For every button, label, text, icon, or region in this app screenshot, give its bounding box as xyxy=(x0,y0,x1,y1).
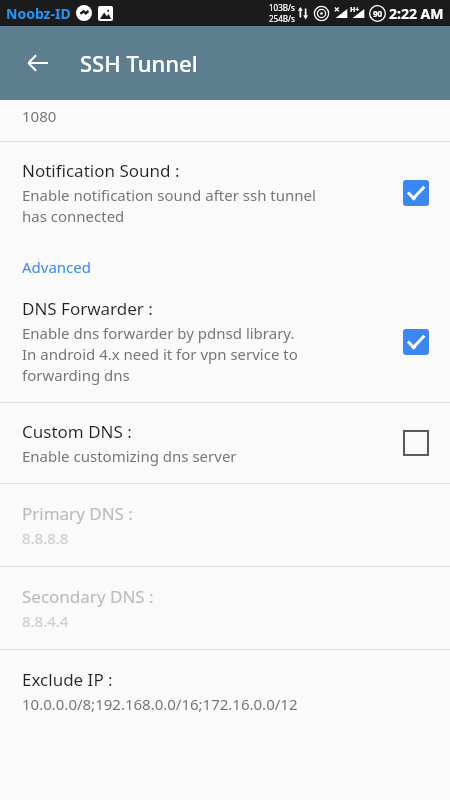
staticText: 90 xyxy=(373,8,383,19)
button[interactable]: Back xyxy=(14,39,62,87)
button[interactable]: Custom DNS : xyxy=(0,403,450,483)
staticText: 8.8.4.4 xyxy=(22,611,69,631)
staticText: Enable customizing dns server xyxy=(22,446,237,466)
button[interactable]: Enabled checkbox xyxy=(392,318,440,366)
staticText: Exclude IP : xyxy=(22,668,113,691)
staticText: Primary DNS : xyxy=(22,502,133,525)
button[interactable]: Enabled checkbox xyxy=(392,169,440,217)
staticText: H+ xyxy=(350,5,360,15)
staticText: 1080 xyxy=(22,106,57,126)
button[interactable]: Disabled checkbox xyxy=(392,419,440,467)
staticText: 2:22 AM xyxy=(389,4,444,23)
staticText: 103B/s xyxy=(269,2,295,13)
staticText: Enable notification sound after ssh tunn… xyxy=(22,185,316,227)
staticText: SSH Tunnel xyxy=(80,48,198,78)
staticText: Noobz-ID xyxy=(6,4,71,23)
staticText: 10.0.0.0/8;192.168.0.0/16;172.16.0.0/12 xyxy=(22,694,298,714)
staticText: Advanced xyxy=(22,257,92,277)
staticText: Secondary DNS : xyxy=(22,585,154,608)
button[interactable]: Primary DNS : xyxy=(0,484,450,566)
staticText: DNS Forwarder : xyxy=(22,297,153,320)
staticText: Enable dns forwarder by pdnsd library. I… xyxy=(22,323,298,386)
staticText: Custom DNS : xyxy=(22,420,132,443)
button[interactable]: Notification Sound : xyxy=(0,142,450,241)
button[interactable]: DNS Forwarder : xyxy=(0,291,450,402)
staticText: 254B/s xyxy=(269,13,295,24)
button[interactable]: Secondary DNS : xyxy=(0,567,450,649)
button[interactable]: 1080 xyxy=(0,100,450,141)
staticText: Notification Sound : xyxy=(22,159,180,182)
staticText: 8.8.8.8 xyxy=(22,528,69,548)
button[interactable]: Exclude IP : xyxy=(0,650,450,732)
